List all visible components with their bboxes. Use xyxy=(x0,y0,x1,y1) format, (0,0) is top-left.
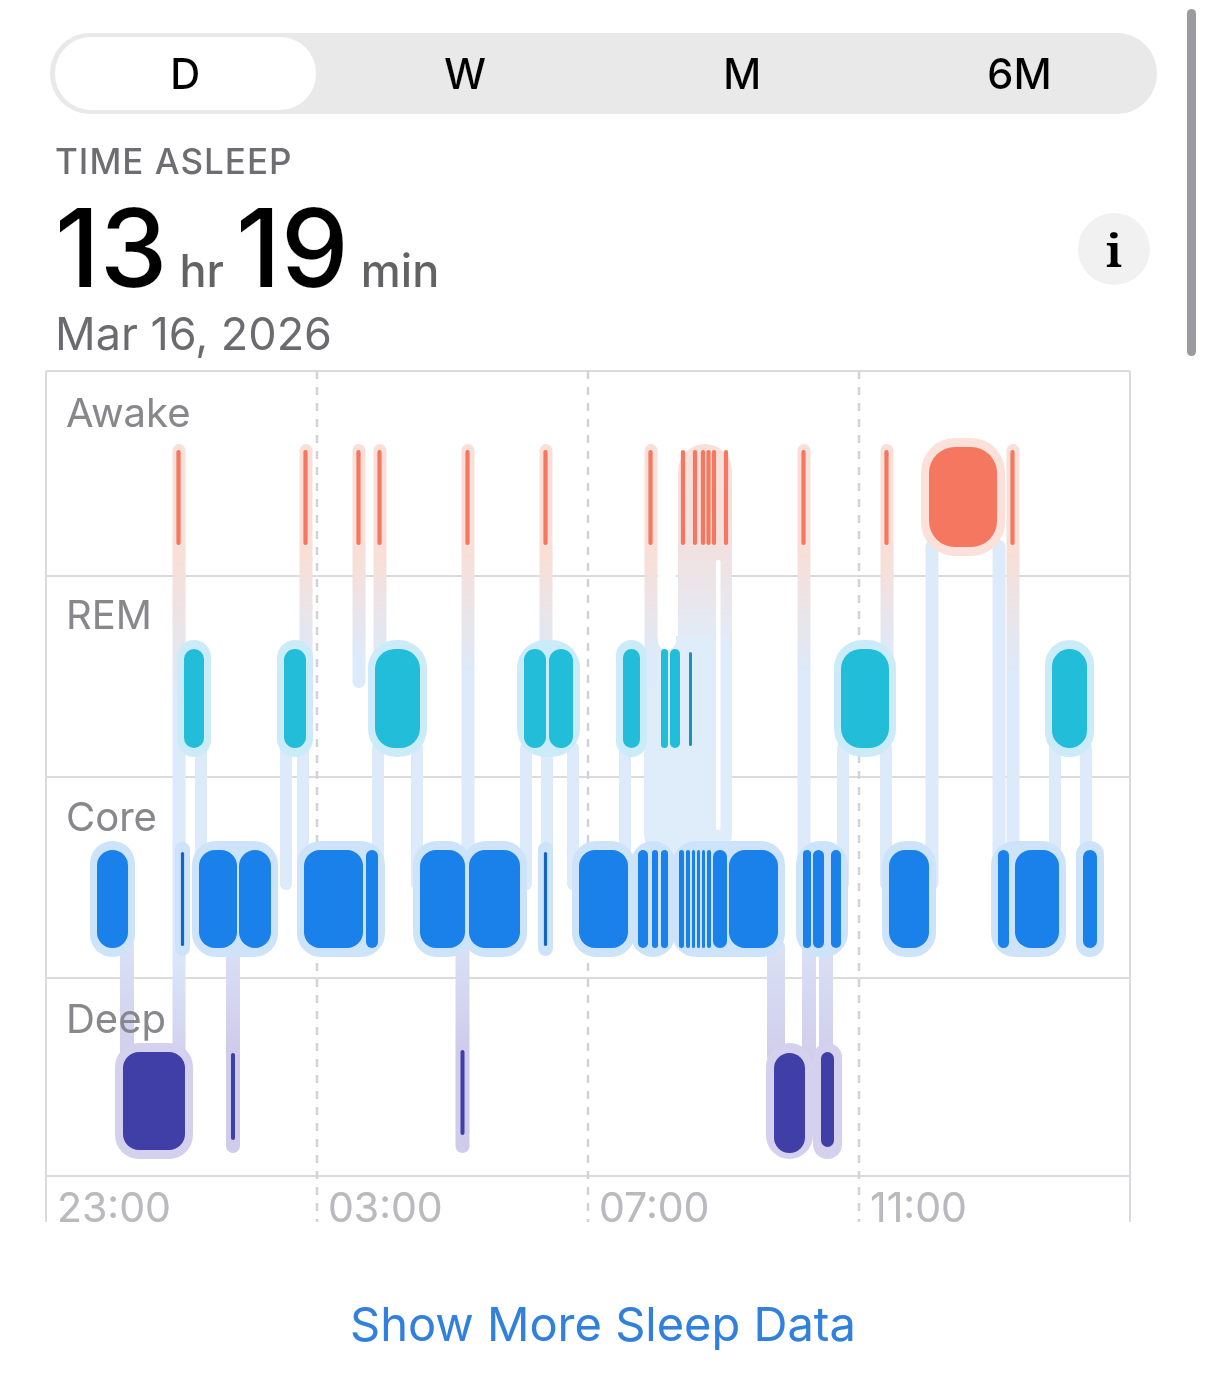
staticText: Core xyxy=(66,792,157,840)
button[interactable]: 6M xyxy=(881,33,1157,114)
button[interactable]: M xyxy=(604,33,881,114)
staticText: 03:00 xyxy=(328,1182,443,1232)
staticText: Deep xyxy=(66,994,166,1042)
staticText: 07:00 xyxy=(599,1182,710,1232)
staticText: Mar 16, 2026 xyxy=(55,306,333,360)
button[interactable]: i xyxy=(1078,213,1150,285)
staticText: 6M xyxy=(987,48,1052,99)
staticText: 13 hr 19 min xyxy=(55,182,440,313)
button[interactable]: D xyxy=(55,37,316,110)
staticText: TIME ASLEEP xyxy=(55,140,293,182)
staticText: Show More Sleep Data xyxy=(350,1295,856,1352)
staticText: i xyxy=(1106,218,1123,281)
staticText: 11:00 xyxy=(870,1182,967,1232)
button[interactable]: Show More Sleep Data xyxy=(0,1288,1206,1358)
button[interactable]: W xyxy=(327,33,604,114)
staticText: M xyxy=(723,48,762,99)
staticText: Awake xyxy=(66,388,191,436)
staticText: REM xyxy=(66,590,152,638)
staticText: D xyxy=(170,48,201,99)
staticText: 23:00 xyxy=(57,1182,171,1232)
staticText: W xyxy=(444,48,487,99)
